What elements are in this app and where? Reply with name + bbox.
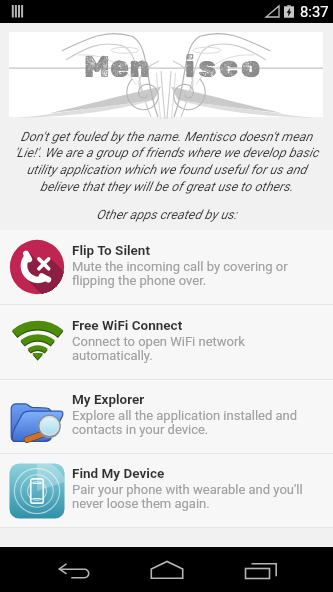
staticText: Flip To Silent xyxy=(72,242,150,258)
staticText: Find My Device xyxy=(72,465,165,481)
button[interactable]: Free WiFi Connect xyxy=(0,305,333,379)
staticText: Explore all the application installed an… xyxy=(72,408,298,438)
staticText: Other apps created by us: xyxy=(0,207,333,222)
button[interactable]: Back xyxy=(26,547,120,592)
button[interactable]: Home xyxy=(120,547,214,592)
staticText: Mute the incoming call by covering or fl… xyxy=(72,259,288,289)
staticText: My Explorer xyxy=(72,391,145,407)
button[interactable]: My Explorer xyxy=(0,380,333,453)
staticText: Men xyxy=(84,49,151,85)
staticText: isco xyxy=(185,49,264,85)
staticText: 8:37 xyxy=(300,3,329,20)
staticText: Pair your phone with wearable and you'll… xyxy=(72,482,303,512)
button[interactable]: Find My Device xyxy=(0,454,333,527)
staticText: Don't get fouled by the name. Mentisco d… xyxy=(0,129,333,194)
button[interactable]: Recent apps xyxy=(214,547,308,592)
staticText: Connect to open WiFi network automatical… xyxy=(72,334,245,364)
button[interactable]: Flip To Silent xyxy=(0,230,333,304)
staticText: Free WiFi Connect xyxy=(72,317,183,333)
